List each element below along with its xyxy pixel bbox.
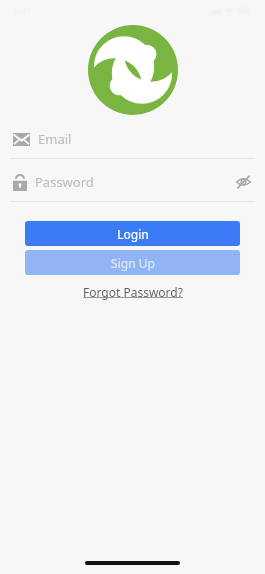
staticText: Sign Up — [111, 255, 155, 271]
button[interactable]: Login — [25, 221, 240, 246]
staticText: Login — [117, 226, 149, 242]
button[interactable]: Sign Up — [25, 250, 240, 275]
staticText: Forgot Password? — [83, 284, 183, 300]
button[interactable]: Forgot Password? — [77, 282, 189, 302]
other: Email icon — [13, 133, 30, 146]
other: Password icon — [13, 174, 27, 191]
button[interactable]: Email icon — [0, 126, 265, 159]
button[interactable]: Toggle password visibility — [232, 171, 255, 193]
staticText: Email — [38, 130, 72, 148]
button[interactable]: Password icon — [0, 169, 265, 202]
staticText: Password — [35, 173, 94, 191]
